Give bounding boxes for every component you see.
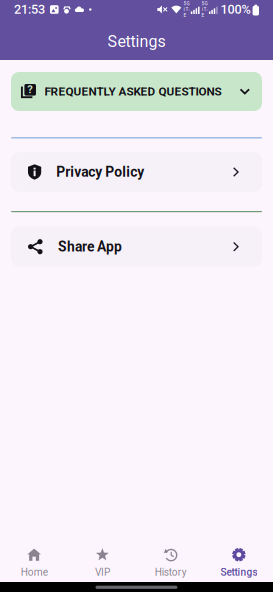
button[interactable]: ? [11, 72, 262, 111]
staticText: 5G [183, 1, 189, 6]
button[interactable]: Share App [11, 227, 262, 267]
staticText: ? [27, 83, 33, 96]
button[interactable]: History [136, 538, 205, 582]
staticText: Settings [107, 32, 165, 51]
staticText: Share App [58, 239, 122, 255]
button[interactable]: VIP [68, 538, 136, 582]
staticText: VIP [95, 566, 110, 578]
button[interactable]: Privacy Policy [11, 152, 262, 192]
button[interactable]: Settings [205, 538, 273, 582]
staticText: 5G [201, 1, 207, 6]
staticText: History [155, 566, 187, 578]
button[interactable]: Home [0, 538, 68, 582]
staticText: Home [21, 566, 48, 578]
staticText: Privacy Policy [56, 164, 144, 180]
staticText: LTE [183, 7, 189, 18]
staticText: 100% [221, 2, 251, 17]
staticText: FREQUENTLY ASKED QUESTIONS [44, 85, 221, 98]
staticText: 21:53 [14, 2, 45, 17]
staticText: LTE [201, 7, 207, 18]
staticText: Settings [220, 566, 257, 578]
